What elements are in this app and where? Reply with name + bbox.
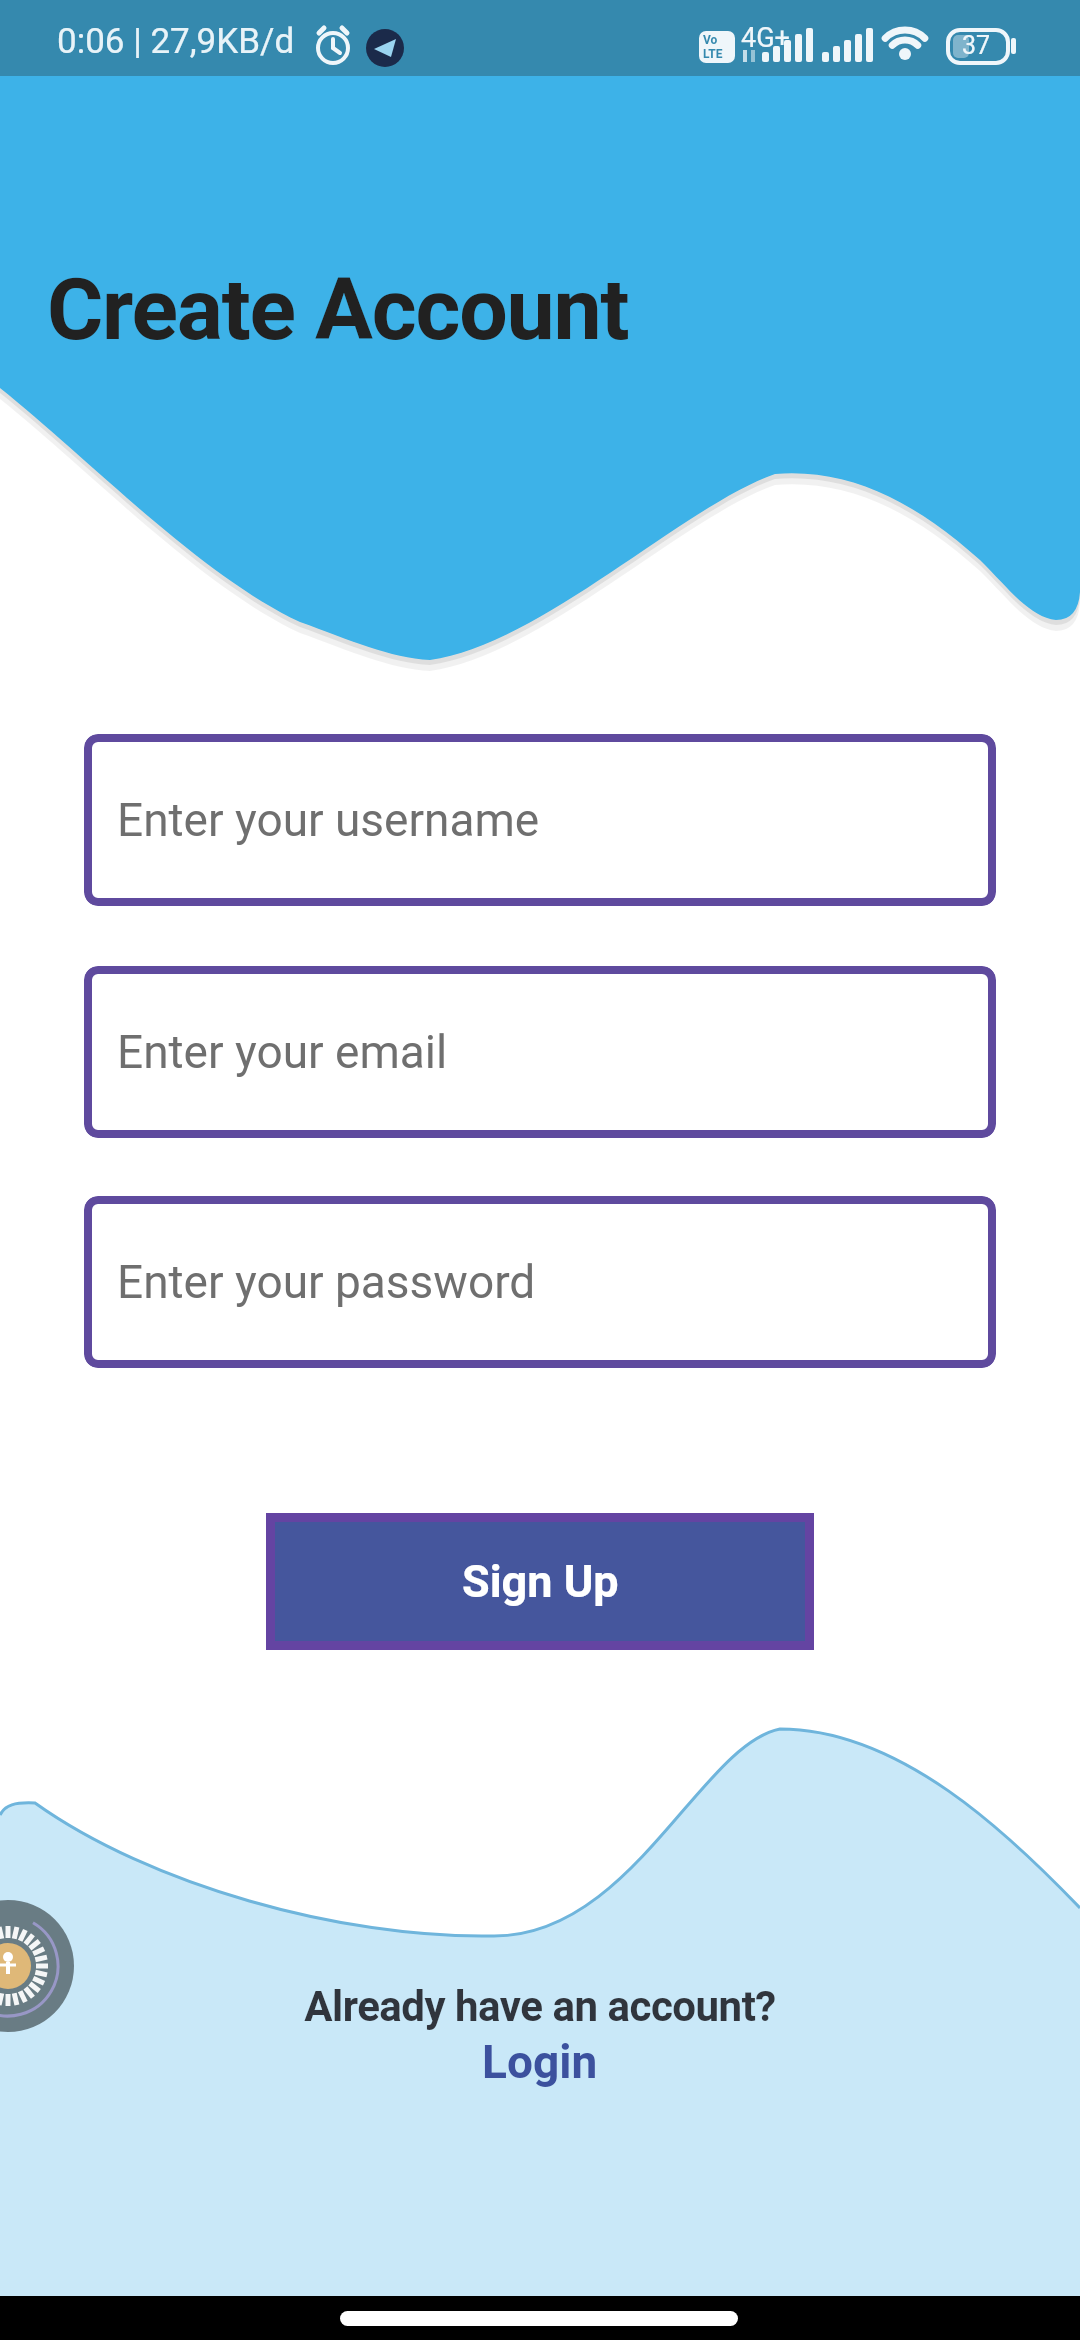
staticText: Create Account [47, 259, 629, 360]
staticText: Enter your username [117, 793, 540, 847]
staticText: Enter your email [117, 1025, 448, 1079]
button[interactable]: Enter your email [84, 966, 996, 1138]
staticText: Enter your password [117, 1255, 536, 1309]
staticText: 4G+ [741, 22, 790, 54]
staticText: 0:06 | 27,9KB/d [57, 21, 295, 62]
button[interactable]: Login [482, 2035, 598, 2089]
staticText: 37 [962, 31, 991, 60]
staticText: Vo LTE [703, 33, 723, 61]
staticText: Already have an account? [0, 1982, 1080, 2031]
button[interactable]: Enter your username [84, 734, 996, 906]
staticText: Sign Up [462, 1555, 619, 1608]
staticText: Login [482, 2035, 598, 2089]
button[interactable]: Sign Up [266, 1513, 814, 1650]
button[interactable]: Enter your password [84, 1196, 996, 1368]
